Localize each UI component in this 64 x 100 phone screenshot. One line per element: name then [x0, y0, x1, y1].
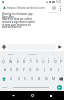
staticText: F [23, 67, 25, 72]
button[interactable]: 8 [46, 56, 52, 65]
staticText: 5 [30, 57, 32, 60]
staticText: G [29, 67, 32, 72]
button[interactable]: S [8, 65, 14, 74]
staticText: 4 [24, 57, 26, 60]
staticText: R [23, 59, 26, 64]
staticText: T [30, 59, 32, 64]
button[interactable]: Thanks [22, 51, 43, 56]
button[interactable]: K [48, 65, 55, 74]
button[interactable]: Space [12, 83, 50, 91]
button[interactable]: N [43, 74, 50, 83]
button[interactable]: Backspace [57, 74, 64, 83]
button[interactable]: Add attachment [0, 42, 7, 51]
staticText: 6 [36, 57, 38, 60]
button[interactable]: 0 [58, 56, 64, 65]
staticText: , [10, 85, 11, 89]
staticText: 3 [17, 57, 19, 60]
staticText: Z [10, 76, 12, 81]
staticText: H [36, 67, 39, 72]
button[interactable]: X [15, 74, 22, 83]
button[interactable]: Hide keyboard [9, 91, 18, 100]
button[interactable]: , [8, 83, 12, 91]
button[interactable]: L [55, 65, 62, 74]
button[interactable]: ?123 [0, 83, 8, 91]
button[interactable]: Site information [2, 5, 7, 10]
staticText: S [10, 67, 12, 72]
staticText: I [53, 52, 54, 55]
staticText: P [60, 59, 63, 64]
staticText: Thanks [28, 52, 37, 55]
button[interactable]: A [2, 65, 8, 74]
staticText: D [16, 67, 19, 72]
button[interactable]: C [22, 74, 29, 83]
button[interactable]: B [36, 74, 43, 83]
staticText: Based on data we collect [2, 17, 33, 20]
button[interactable]: H [34, 65, 41, 74]
staticText: 0 [60, 57, 62, 60]
button[interactable]: Z [7, 74, 15, 83]
button[interactable]: 5 [28, 56, 34, 65]
button[interactable]: J [41, 65, 48, 74]
button[interactable]: Shift [0, 74, 7, 83]
staticText: ?123 [2, 86, 7, 89]
staticText: Sharing to a browser app [2, 12, 33, 15]
staticText: 12:45 PM [48, 11, 58, 14]
staticText: android devices. [2, 25, 22, 28]
button[interactable]: . [50, 83, 54, 91]
button[interactable]: Account [51, 5, 57, 11]
button[interactable]: Hello [0, 51, 22, 56]
button[interactable]: V [29, 74, 36, 83]
staticText: E [17, 59, 19, 64]
staticText: X [18, 76, 20, 81]
button[interactable]: D [14, 65, 20, 74]
staticText: Hello [8, 52, 15, 55]
staticText: N [45, 76, 48, 81]
staticText: I [48, 59, 50, 64]
staticText: Dear Alex, [2, 15, 15, 18]
staticText: C [24, 76, 27, 81]
button[interactable]: I [43, 51, 64, 56]
button[interactable]: Send [56, 42, 63, 51]
staticText: . [52, 85, 53, 89]
staticText: 2 [10, 57, 12, 60]
button[interactable]: More options [57, 5, 63, 11]
button[interactable]: 9 [52, 56, 58, 65]
staticText: 7 [42, 57, 44, 60]
staticText: in new user sessions on [2, 23, 31, 26]
button[interactable]: G [27, 65, 34, 74]
staticText: V [31, 76, 34, 81]
button[interactable]: F [20, 65, 27, 74]
staticText: 9 [54, 57, 56, 60]
button[interactable]: 3 [14, 56, 21, 65]
button[interactable]: 1 [0, 56, 7, 65]
staticText: L [58, 67, 60, 72]
staticText: 1 [3, 57, 5, 60]
staticText: J [44, 67, 45, 72]
staticText: noticed a significant uptick [2, 20, 35, 23]
button[interactable]: Enter [54, 83, 64, 91]
staticText: M [52, 76, 56, 81]
staticText: https://share.android.com [7, 6, 45, 10]
staticText: 8 [48, 57, 50, 60]
staticText: U [42, 59, 45, 64]
staticText: Y [36, 59, 38, 64]
button[interactable]: 2 [7, 56, 14, 65]
button[interactable]: Recent apps [46, 91, 55, 100]
button[interactable]: 4 [21, 56, 28, 65]
staticText: O [54, 59, 57, 64]
staticText: 9:41 [56, 0, 62, 4]
staticText: K [50, 67, 53, 72]
staticText: A [4, 67, 7, 72]
staticText: B [38, 76, 41, 81]
staticText: W [9, 59, 13, 64]
button[interactable]: Home [28, 91, 37, 100]
button[interactable]: 7 [40, 56, 46, 65]
button[interactable]: M [50, 74, 57, 83]
staticText: Q [2, 59, 5, 64]
button[interactable]: 6 [34, 56, 40, 65]
